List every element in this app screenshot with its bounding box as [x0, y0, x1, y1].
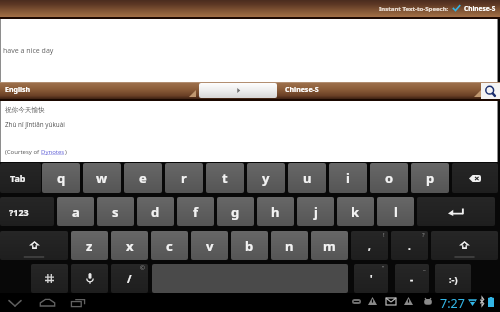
staticText: h [271, 203, 280, 221]
staticText: ?123 [9, 206, 29, 218]
staticText: ! [383, 231, 385, 239]
staticText: Instant Text-to-Speech: [379, 5, 449, 13]
staticText: " [382, 264, 385, 272]
staticText: p [426, 169, 435, 187]
staticText: a [72, 203, 80, 221]
button[interactable]: v [191, 231, 228, 260]
staticText: © [140, 264, 145, 272]
button[interactable]: x [111, 231, 148, 260]
staticText: v [206, 237, 214, 255]
staticText: q [57, 169, 66, 187]
button[interactable]: Shift [0, 231, 68, 260]
button[interactable]: c [151, 231, 188, 260]
button[interactable]: :-) [435, 264, 471, 293]
button[interactable]: Dynotes [41, 148, 65, 156]
button[interactable]: Chinese-S [280, 82, 481, 99]
staticText: j [314, 203, 318, 221]
staticText: ' [370, 272, 373, 286]
staticText: 7:27 [440, 295, 465, 312]
button[interactable]: r [165, 163, 203, 193]
button[interactable]: w [83, 163, 121, 193]
button[interactable]: Instant Text-to-Speech checkbox [453, 5, 460, 12]
button[interactable]: Swap languages [199, 83, 277, 98]
staticText: b [245, 237, 254, 255]
button[interactable]: - [395, 264, 429, 293]
staticText: ) [65, 148, 67, 156]
staticText: i [346, 169, 350, 187]
button[interactable]: k [337, 197, 374, 226]
button[interactable]: u [288, 163, 326, 193]
button[interactable]: . [391, 231, 428, 260]
staticText: (Courtesy of [5, 148, 41, 156]
staticText: s [112, 203, 119, 221]
staticText: g [231, 203, 240, 221]
staticText: e [139, 169, 147, 187]
staticText: ? [422, 231, 425, 239]
staticText: r [181, 169, 187, 187]
staticText: have a nice day [3, 46, 54, 56]
button[interactable]: p [411, 163, 449, 193]
staticText: _ [423, 264, 426, 272]
button[interactable]: y [247, 163, 285, 193]
button[interactable]: m [311, 231, 348, 260]
staticText: z [86, 237, 93, 255]
button[interactable]: English [0, 82, 196, 99]
staticText: , [368, 239, 371, 253]
button[interactable]: Input method [31, 264, 68, 293]
button[interactable]: / [111, 264, 148, 293]
button[interactable]: Tab [0, 163, 41, 193]
button[interactable]: d [137, 197, 174, 226]
staticText: Chinese-S [285, 85, 319, 95]
button[interactable]: g [217, 197, 254, 226]
staticText: k [351, 203, 360, 221]
button[interactable]: Hide keyboard [5, 295, 25, 310]
button[interactable]: Shift right [431, 231, 498, 260]
button[interactable]: ' [354, 264, 388, 293]
button[interactable]: Search [481, 83, 500, 99]
staticText: x [126, 237, 134, 255]
button[interactable]: Home [37, 295, 57, 310]
staticText: Tab [10, 172, 26, 184]
staticText: d [151, 203, 160, 221]
staticText: English [5, 85, 31, 95]
button[interactable]: t [206, 163, 244, 193]
staticText: c [166, 237, 173, 255]
staticText: l [394, 203, 398, 221]
button[interactable]: n [271, 231, 308, 260]
staticText: . [408, 239, 411, 253]
button[interactable]: h [257, 197, 294, 226]
button[interactable]: f [177, 197, 214, 226]
button[interactable]: s [97, 197, 134, 226]
button[interactable]: ?123 [0, 197, 54, 226]
staticText: w [96, 169, 108, 187]
staticText: / [127, 271, 132, 286]
staticText: y [262, 169, 270, 187]
staticText: m [323, 237, 336, 255]
button[interactable]: i [329, 163, 367, 193]
staticText: :-) [449, 273, 458, 285]
button[interactable]: Recents [68, 295, 88, 310]
staticText: n [285, 237, 294, 255]
button[interactable]: q [42, 163, 80, 193]
button[interactable]: b [231, 231, 268, 260]
staticText: 祝你今天愉快 [5, 106, 45, 114]
button[interactable]: Backspace [452, 163, 498, 193]
staticText: t [222, 169, 228, 187]
button[interactable]: Enter [417, 197, 495, 226]
staticText: Zhù nǐ jīntiān yúkuài [5, 120, 65, 129]
button[interactable]: a [57, 197, 94, 226]
staticText: Chinese-S [464, 4, 496, 13]
button[interactable]: l [377, 197, 414, 226]
button[interactable]: z [71, 231, 108, 260]
staticText: u [303, 169, 312, 187]
button[interactable]: o [370, 163, 408, 193]
staticText: - [410, 272, 414, 286]
button[interactable]: j [297, 197, 334, 226]
button[interactable]: , [351, 231, 388, 260]
button[interactable]: Voice input [71, 264, 108, 293]
staticText: o [385, 169, 394, 187]
staticText: f [193, 203, 199, 221]
button[interactable]: e [124, 163, 162, 193]
